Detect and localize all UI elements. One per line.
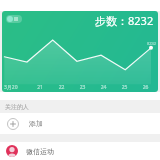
staticText: 26 [135, 84, 156, 91]
staticText: 3月20 [4, 84, 29, 91]
staticText: 8232 [147, 41, 157, 46]
button[interactable]: 微信运动 [0, 142, 160, 160]
button[interactable]: Toggle step sharing [6, 15, 22, 23]
staticText: 步数：8232 [95, 13, 154, 28]
staticText: 关注的人 [5, 103, 29, 111]
staticText: 21 [29, 84, 51, 91]
staticText: 微信运动 [26, 147, 54, 156]
staticText: 添加 [29, 119, 43, 128]
staticText: 22 [51, 84, 72, 91]
button[interactable]: Toggle step sharing [2, 11, 158, 92]
staticText: 24 [93, 84, 114, 91]
staticText: 25 [114, 84, 135, 91]
button[interactable]: 添加 [0, 113, 160, 134]
staticText: 23 [72, 84, 93, 91]
